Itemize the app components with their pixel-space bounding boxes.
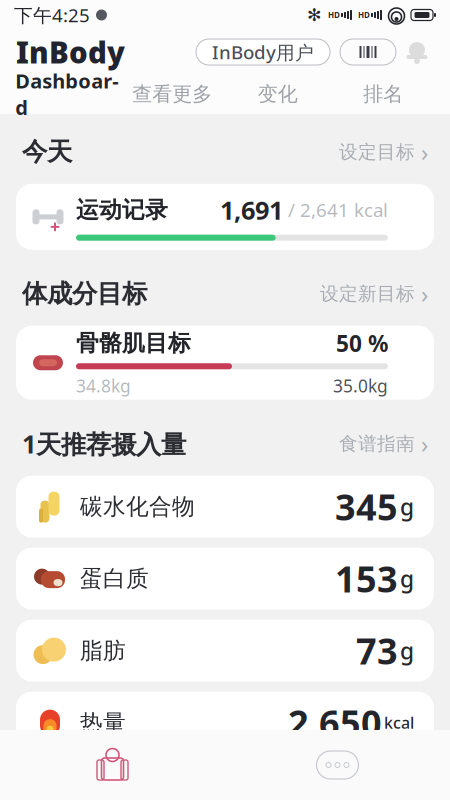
staticText: 50 % [336,328,388,358]
button[interactable]: 变化 [225,74,330,114]
staticText: / 2,641 kcal [283,197,388,222]
staticText: 体成分目标 [22,278,147,309]
button[interactable]: 排名 [330,74,436,114]
staticText: 设定目标 [339,140,415,163]
button[interactable]: 碳水化合物 [16,476,434,538]
button[interactable]: Notifications [400,35,434,69]
staticText: 排名 [363,82,403,106]
staticText: kcal [384,712,414,733]
staticText: 变化 [258,82,298,106]
button[interactable]: Scan barcode [340,39,396,65]
staticText: 运动记录 [76,196,168,224]
staticText: InBody [16,32,125,71]
button[interactable]: 脂肪 [16,620,434,682]
staticText: g [400,492,414,522]
staticText: 下午4:25 [14,3,90,27]
button[interactable]: 蛋白质 [16,548,434,610]
staticText: 食谱指南 [339,432,415,455]
button[interactable]: 骨骼肌目标 [16,326,434,400]
staticText: ✻ [307,5,322,25]
staticText: 设定新目标 [320,282,415,305]
staticText: 153 [335,555,398,602]
staticText: 骨骼肌目标 [76,329,191,357]
staticText: 345 [335,483,398,530]
button[interactable]: Dashboard [14,74,119,114]
button[interactable]: InBody用户 [196,39,330,65]
button[interactable]: 食谱指南 [339,422,428,466]
staticText: InBody用户 [212,40,314,64]
staticText: 今天 [22,136,72,167]
staticText: › [421,278,428,310]
staticText: g [400,564,414,594]
staticText: 蛋白质 [80,565,149,592]
staticText: 34.8kg [76,374,131,397]
staticText: HD [328,10,340,20]
staticText: 2,650 [288,699,382,746]
button[interactable]: More [307,740,367,790]
button[interactable]: 设定新目标 [320,272,428,316]
button[interactable]: 设定目标 [339,130,428,174]
staticText: › [421,428,428,460]
button[interactable]: 运动记录 [16,184,434,250]
staticText: HD [358,10,370,20]
staticText: 热量 [80,709,126,736]
button[interactable]: 热量 [16,692,434,754]
staticText: Dashboard [15,67,118,120]
staticText: 碳水化合物 [80,493,195,520]
staticText: 1,691 [220,193,283,227]
staticText: 73 [356,627,398,674]
staticText: 查看更多 [132,82,212,106]
staticText: 35.0kg [333,374,388,397]
staticText: 1天推荐摄入量 [22,427,186,460]
button[interactable]: 查看更多 [119,74,225,114]
staticText: 脂肪 [80,637,126,664]
staticText: › [421,136,428,168]
staticText: g [400,636,414,666]
button[interactable]: Body [82,740,142,790]
